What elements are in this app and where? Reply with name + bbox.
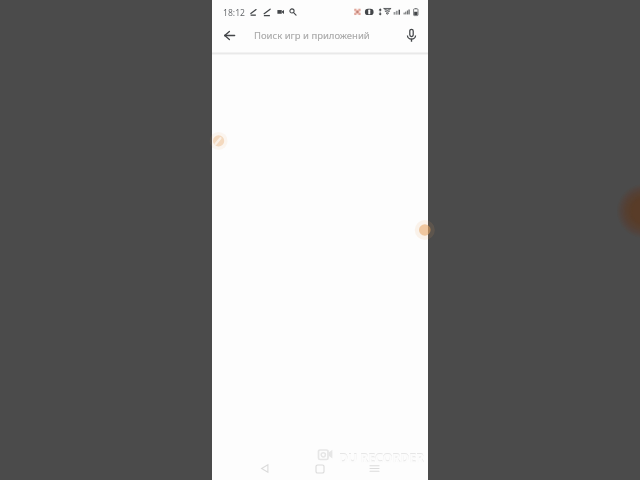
button[interactable]: Back bbox=[219, 25, 240, 46]
button[interactable]: Back bbox=[249, 453, 281, 480]
button[interactable]: Home bbox=[304, 453, 336, 480]
staticText: DU RECORDER bbox=[339, 449, 425, 466]
staticText: DU RECORDER bbox=[339, 450, 425, 467]
button[interactable]: Recent apps bbox=[358, 453, 390, 480]
button[interactable]: Поиск игр и приложений bbox=[242, 20, 400, 52]
staticText: Поиск игр и приложений bbox=[254, 29, 370, 42]
staticText: 18:12 bbox=[223, 7, 245, 19]
button[interactable]: Voice search bbox=[401, 25, 422, 46]
